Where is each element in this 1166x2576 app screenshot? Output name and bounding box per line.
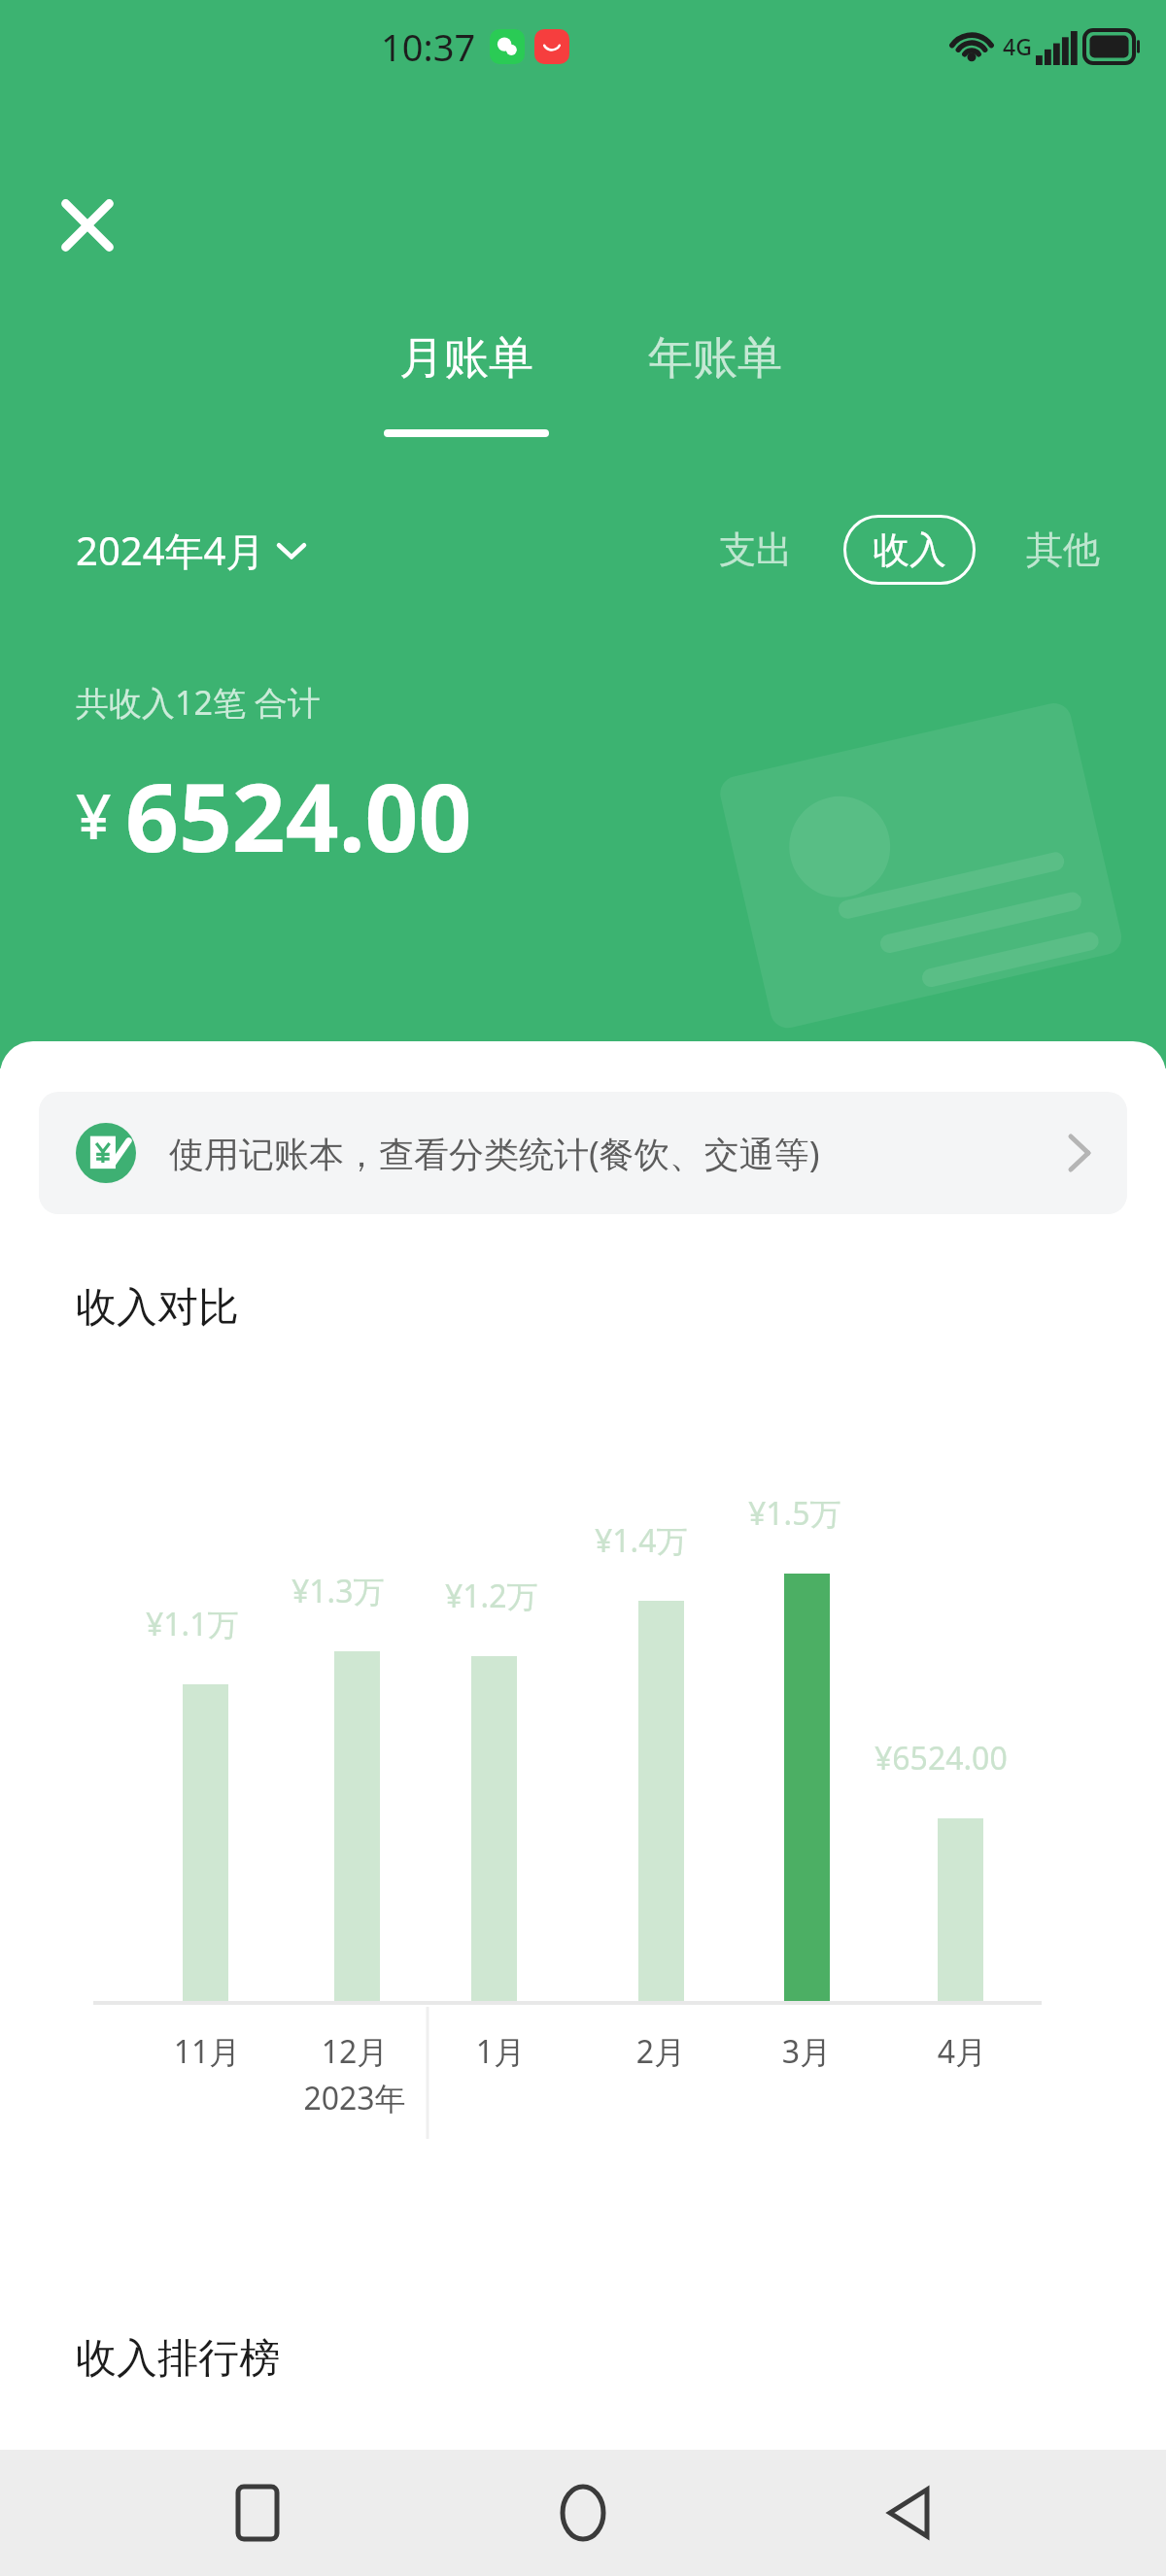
staticText: 4月 bbox=[928, 2030, 996, 2073]
staticText: ¥1.5万 bbox=[748, 1492, 841, 1535]
staticText: 支出 bbox=[719, 526, 793, 573]
button[interactable]: Recents bbox=[189, 2450, 326, 2576]
button[interactable]: 支出 bbox=[709, 517, 803, 583]
staticText: ¥1.4万 bbox=[595, 1519, 688, 1562]
button[interactable]: Home bbox=[515, 2450, 651, 2576]
staticText: 4G bbox=[1003, 31, 1032, 61]
staticText: 使用记账本，查看分类统计(餐饮、交通等) bbox=[169, 1130, 820, 1177]
staticText: 其他 bbox=[1026, 526, 1100, 573]
button[interactable]: 年账单 bbox=[631, 330, 800, 387]
staticText: 收入对比 bbox=[76, 1282, 239, 1334]
staticText: 11月 bbox=[173, 2030, 241, 2073]
button[interactable]: 收入 bbox=[843, 515, 976, 585]
button[interactable]: 2024年4月 bbox=[76, 524, 304, 577]
button[interactable]: Close bbox=[33, 171, 142, 280]
staticText: ¥6524.00 bbox=[874, 1737, 1008, 1779]
staticText: ¥1.3万 bbox=[291, 1570, 385, 1612]
staticText: 共收入12笔 合计 bbox=[76, 680, 321, 725]
staticText: 2月 bbox=[627, 2030, 695, 2073]
staticText: 收入 bbox=[873, 526, 946, 573]
button[interactable]: 月账单 bbox=[366, 330, 566, 437]
staticText: 12月 bbox=[321, 2030, 389, 2073]
staticText: 收入排行榜 bbox=[76, 2333, 280, 2385]
button[interactable]: Back bbox=[840, 2450, 977, 2576]
staticText: 3月 bbox=[772, 2030, 840, 2073]
staticText: 年账单 bbox=[648, 330, 782, 387]
button[interactable]: 使用记账本，查看分类统计(餐饮、交通等) bbox=[39, 1092, 1127, 1214]
staticText: 6524.00 bbox=[125, 752, 472, 879]
staticText: 月账单 bbox=[399, 330, 533, 387]
staticText: 2024年4月 bbox=[76, 524, 265, 577]
staticText: ¥1.1万 bbox=[146, 1603, 239, 1645]
button[interactable]: 其他 bbox=[1016, 517, 1110, 583]
staticText: ¥ bbox=[76, 773, 112, 858]
staticText: 1月 bbox=[466, 2030, 534, 2073]
staticText: 10:37 bbox=[381, 21, 476, 72]
staticText: ¥1.2万 bbox=[445, 1575, 538, 1617]
staticText: 2023年 bbox=[301, 2077, 408, 2119]
